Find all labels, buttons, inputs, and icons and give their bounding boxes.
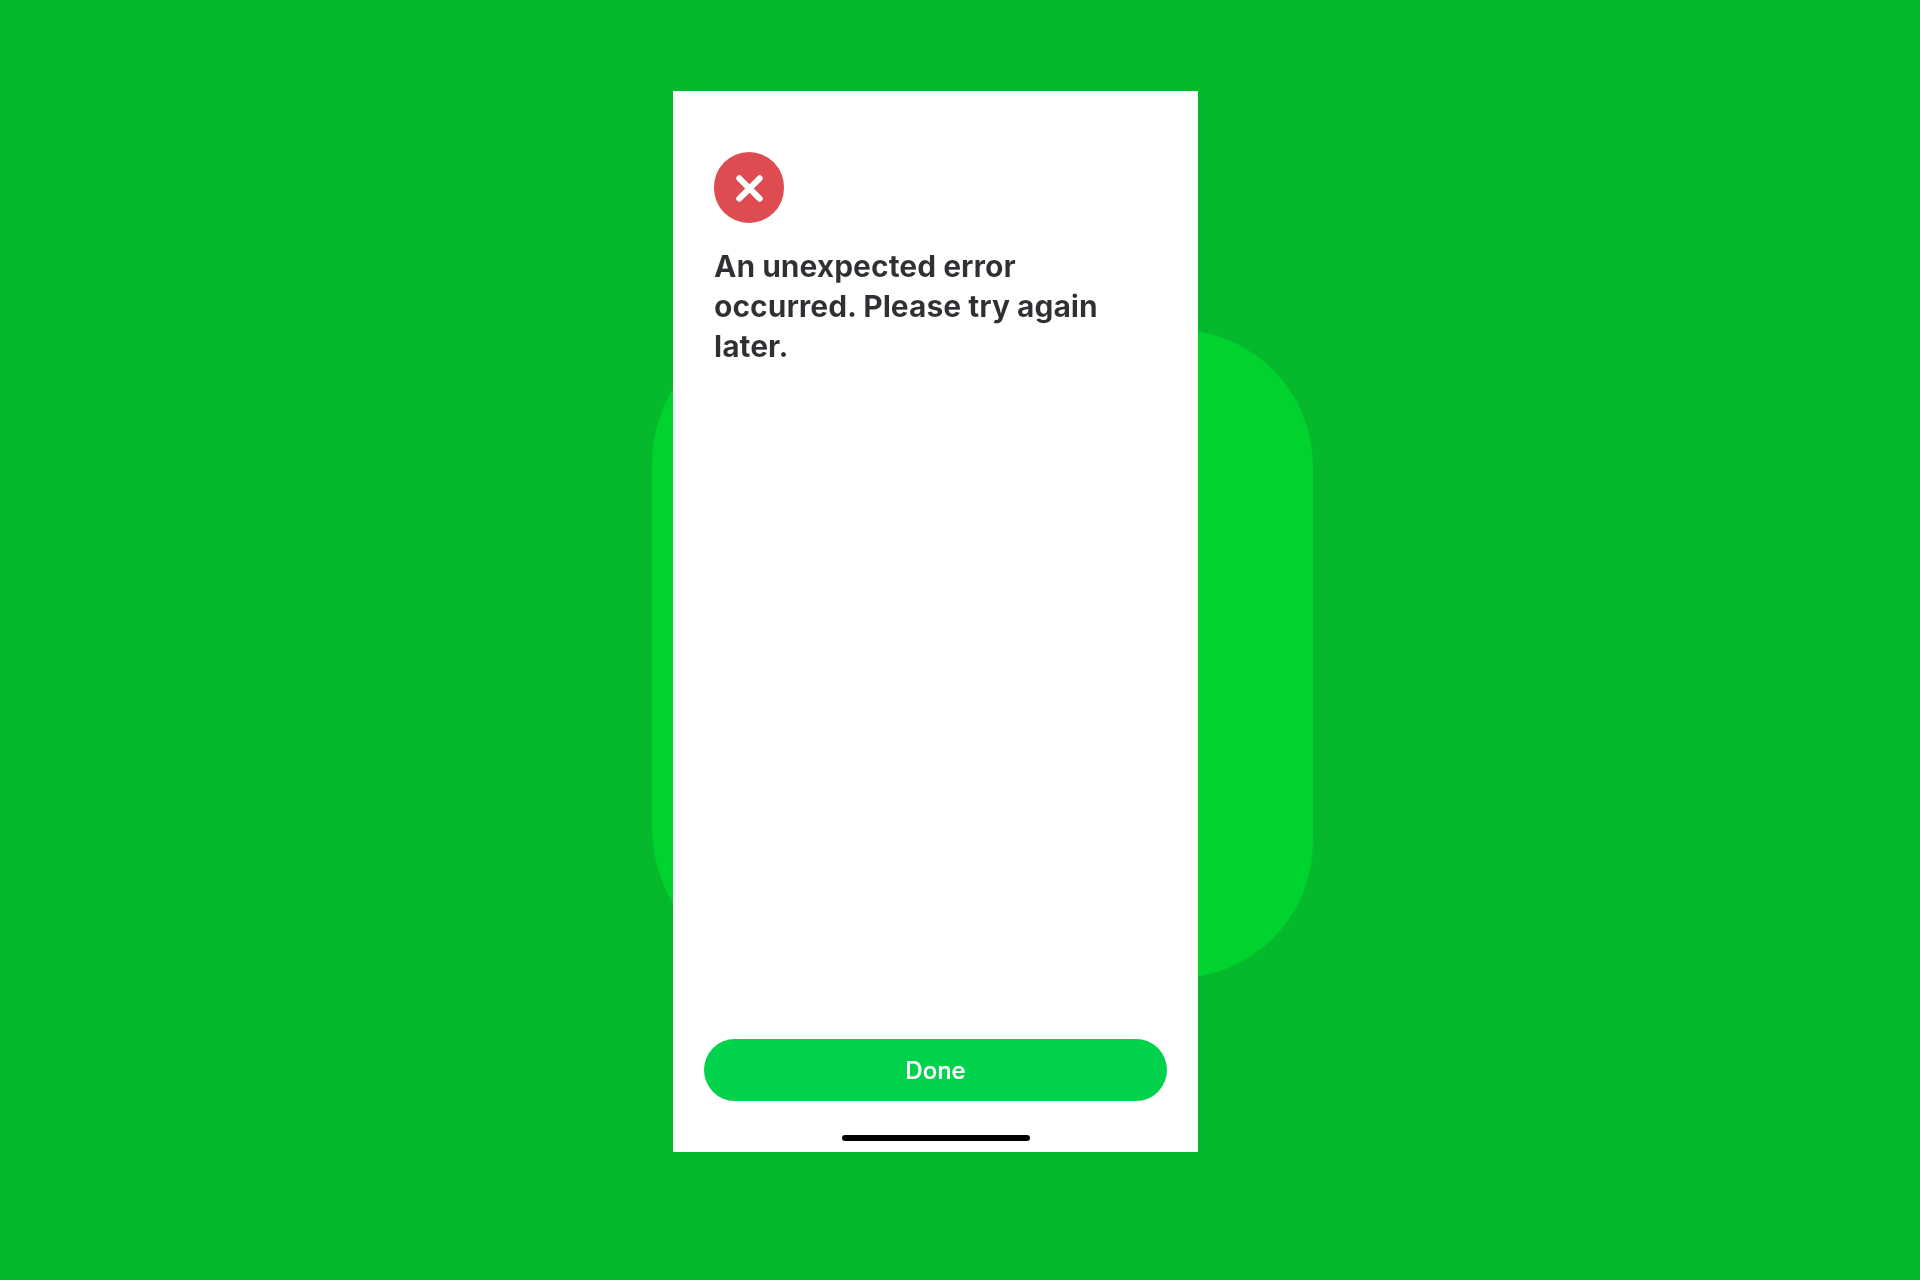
- button[interactable]: Done: [704, 1039, 1167, 1101]
- other: Error: [714, 152, 784, 223]
- staticText: An unexpected error occurred. Please try…: [714, 248, 1114, 364]
- staticText: Done: [905, 1056, 966, 1085]
